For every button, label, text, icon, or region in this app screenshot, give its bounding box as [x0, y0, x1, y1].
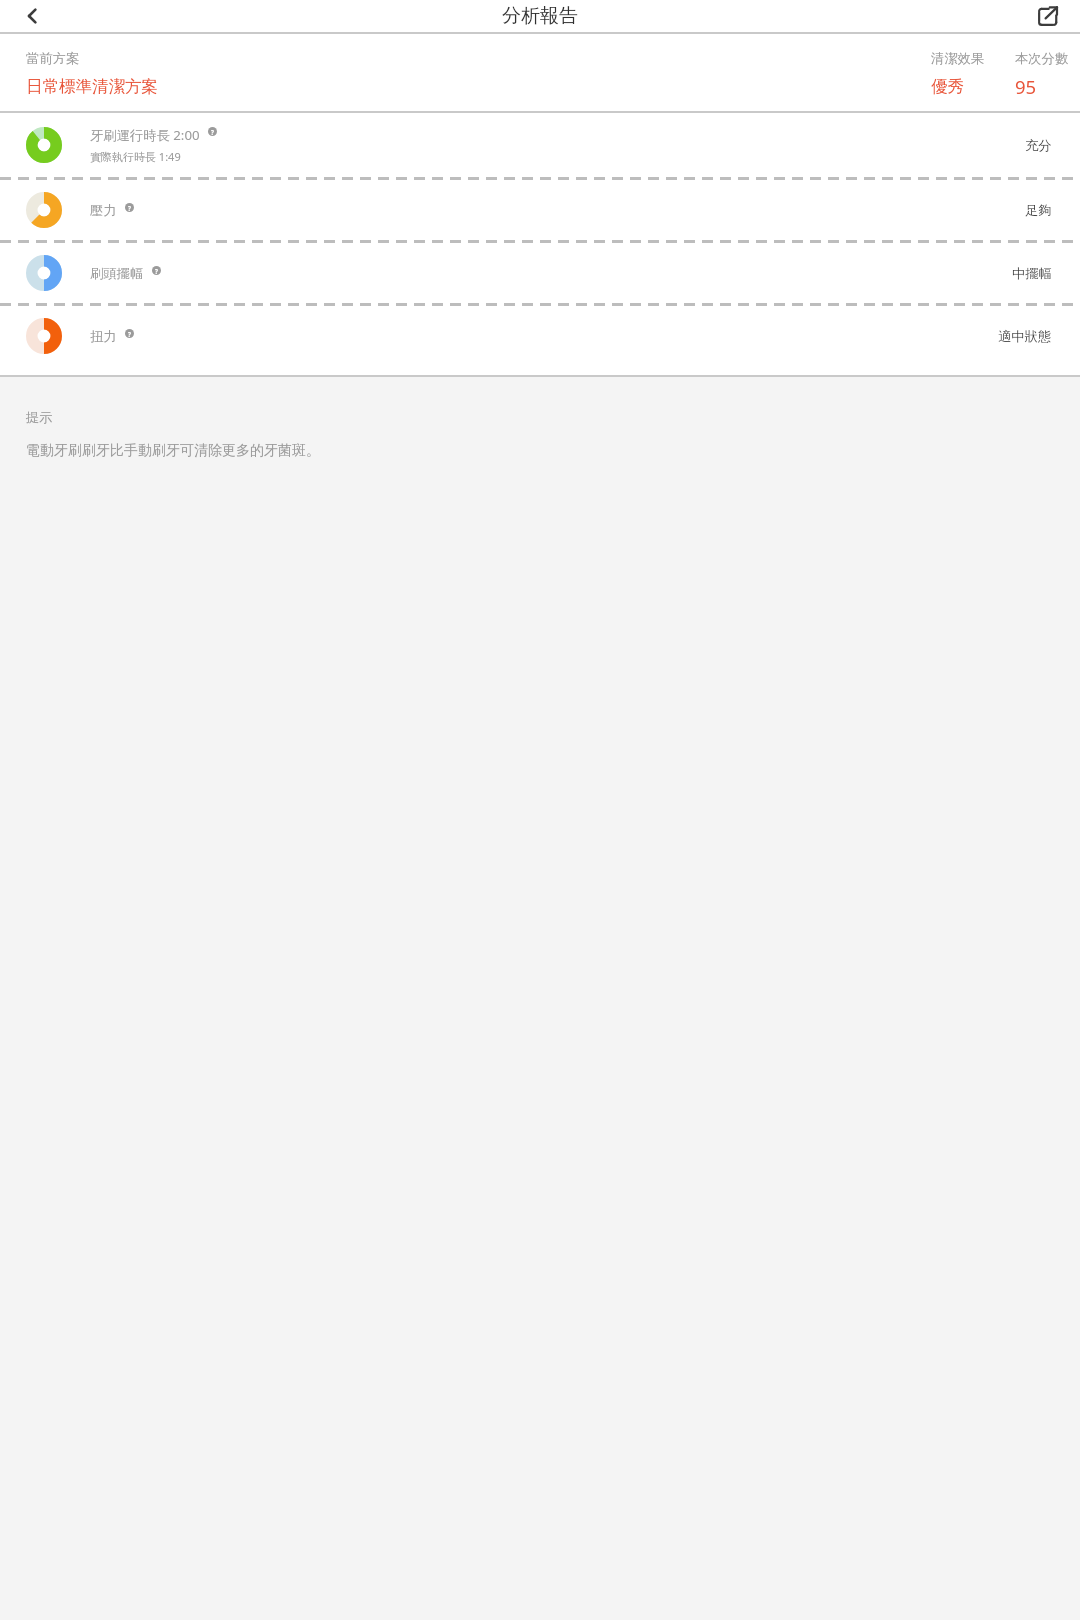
button[interactable]: 說明: [125, 203, 134, 212]
staticText: 分析報告: [502, 4, 578, 28]
button[interactable]: 說明: [208, 127, 217, 136]
staticText: 日常標準清潔方案: [26, 76, 158, 97]
staticText: 刷頭擺幅: [90, 265, 144, 282]
staticText: 壓力: [90, 202, 117, 219]
button[interactable]: 扭力: [0, 306, 1080, 366]
button[interactable]: 牙刷運行時長 2:00: [0, 113, 1080, 177]
staticText: ?: [128, 330, 131, 338]
staticText: 提示: [26, 409, 53, 426]
button[interactable]: 壓力: [0, 180, 1080, 240]
staticText: ?: [211, 128, 214, 136]
staticText: ?: [155, 267, 158, 275]
staticText: 充分: [1025, 137, 1052, 154]
staticText: 中擺幅: [1012, 265, 1052, 282]
staticText: 本次分數: [1015, 50, 1069, 67]
staticText: 電動牙刷刷牙比手動刷牙可清除更多的牙菌斑。: [26, 442, 320, 460]
staticText: 牙刷運行時長 2:00: [90, 126, 200, 144]
button[interactable]: 說明: [125, 329, 134, 338]
staticText: 扭力: [90, 328, 117, 345]
staticText: 足夠: [1025, 202, 1052, 219]
button[interactable]: 說明: [152, 266, 161, 275]
button[interactable]: 刷頭擺幅: [0, 243, 1080, 303]
button[interactable]: 分享: [1022, 0, 1072, 32]
staticText: 當前方案: [26, 50, 80, 67]
staticText: 優秀: [931, 76, 964, 97]
staticText: 實際執行時長 1:49: [90, 149, 181, 164]
staticText: 95: [1015, 74, 1037, 99]
staticText: ?: [128, 204, 131, 212]
staticText: 適中狀態: [998, 328, 1052, 345]
button[interactable]: 返回: [6, 0, 60, 32]
staticText: 清潔效果: [931, 50, 985, 67]
